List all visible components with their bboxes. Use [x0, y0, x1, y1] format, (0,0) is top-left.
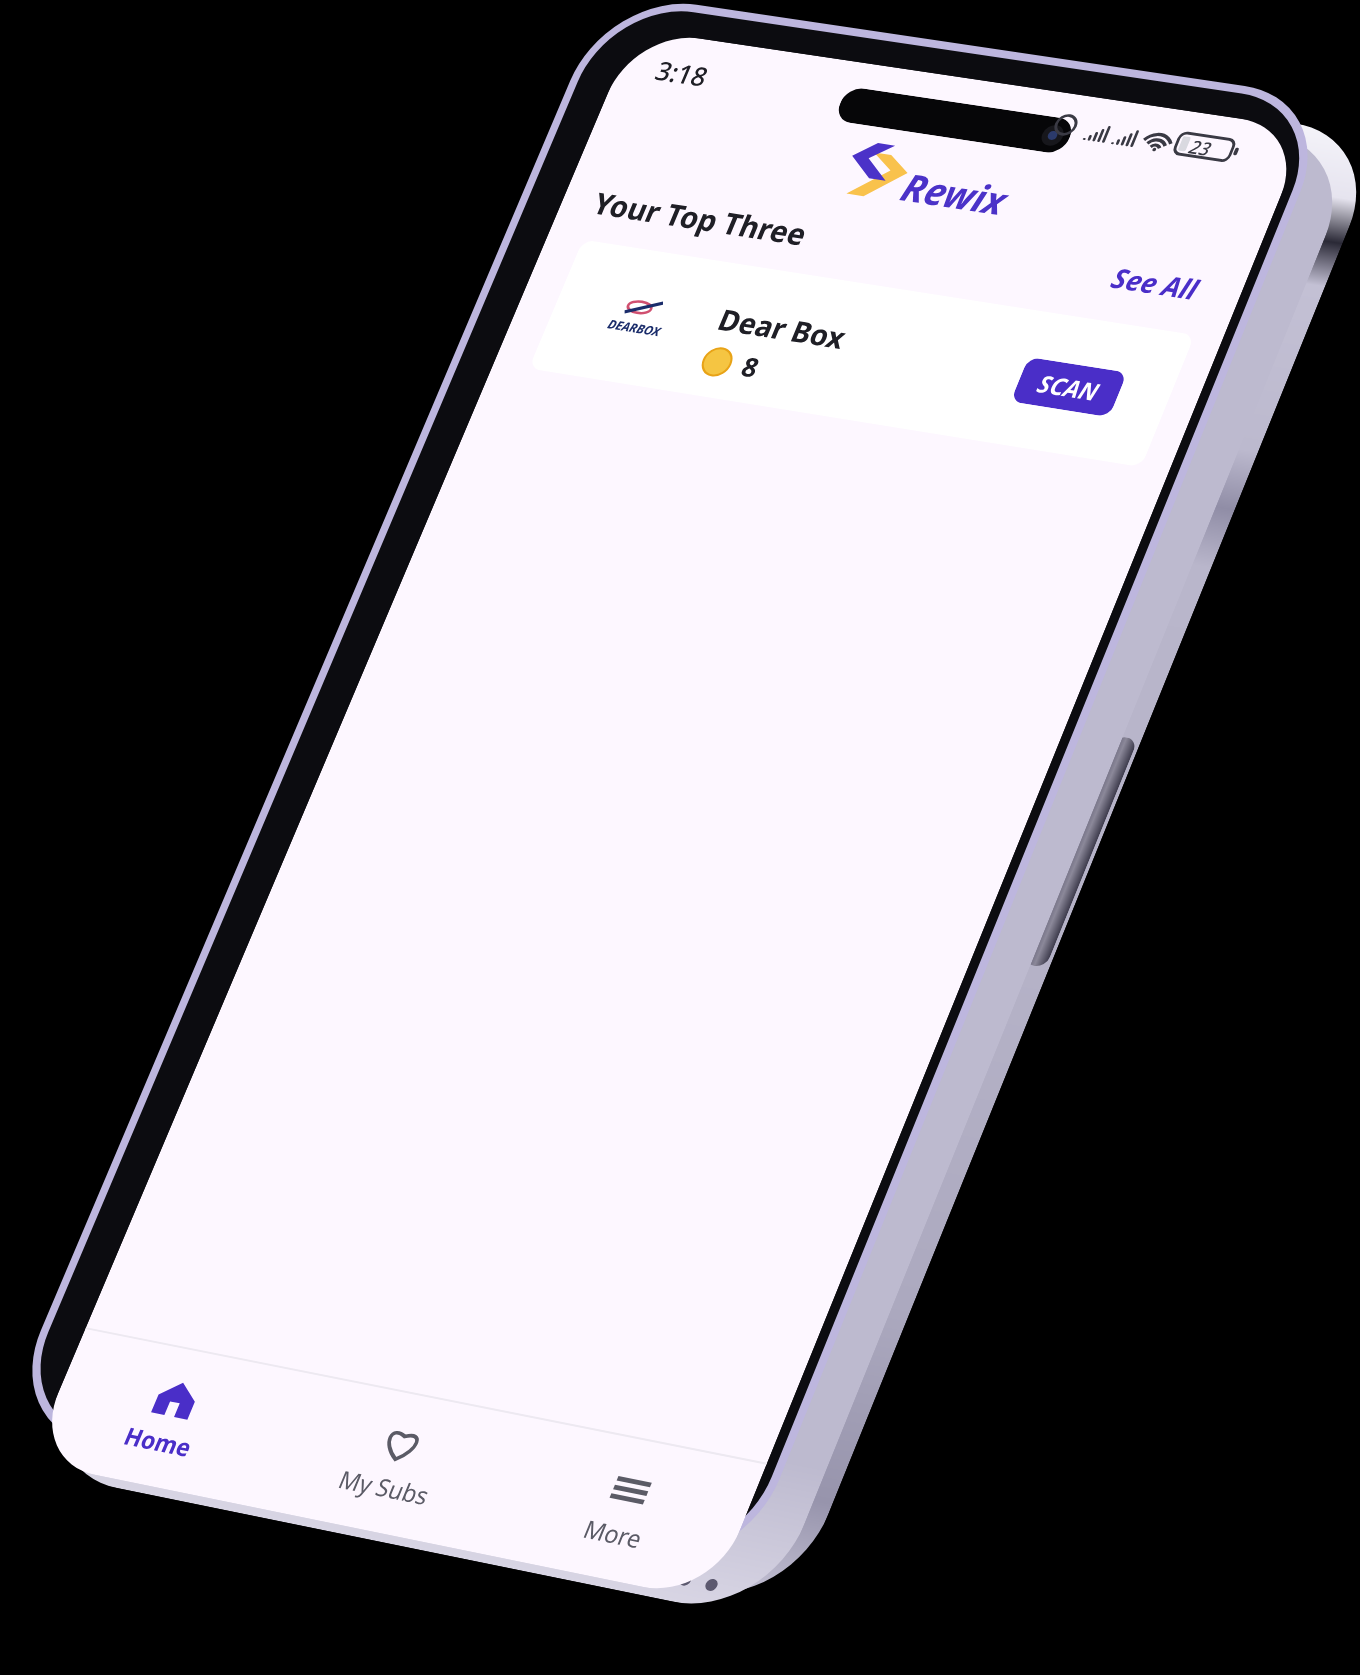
button[interactable]: My Subs	[253, 1372, 536, 1554]
button[interactable]: See All	[1103, 257, 1208, 310]
staticText: DEARBOX	[605, 315, 663, 340]
staticText: My Subs	[334, 1462, 435, 1511]
staticText: 23	[1185, 134, 1216, 162]
button[interactable]: More	[480, 1417, 767, 1601]
staticText: See All	[1106, 259, 1205, 308]
button[interactable]: SCAN	[1010, 357, 1127, 417]
other: Status icons	[1047, 104, 1301, 178]
staticText: Home	[119, 1419, 198, 1463]
staticText: 8	[736, 348, 766, 385]
staticText: Rewix	[894, 161, 1016, 226]
staticText: More	[579, 1512, 648, 1555]
button[interactable]: Home	[29, 1327, 309, 1507]
staticText: Dear Box	[712, 300, 852, 357]
staticText: 3:18	[650, 53, 714, 94]
staticText: SCAN	[1033, 367, 1105, 408]
staticText: Your Top Three	[587, 183, 814, 254]
button[interactable]: DEARBOX	[528, 239, 1195, 467]
